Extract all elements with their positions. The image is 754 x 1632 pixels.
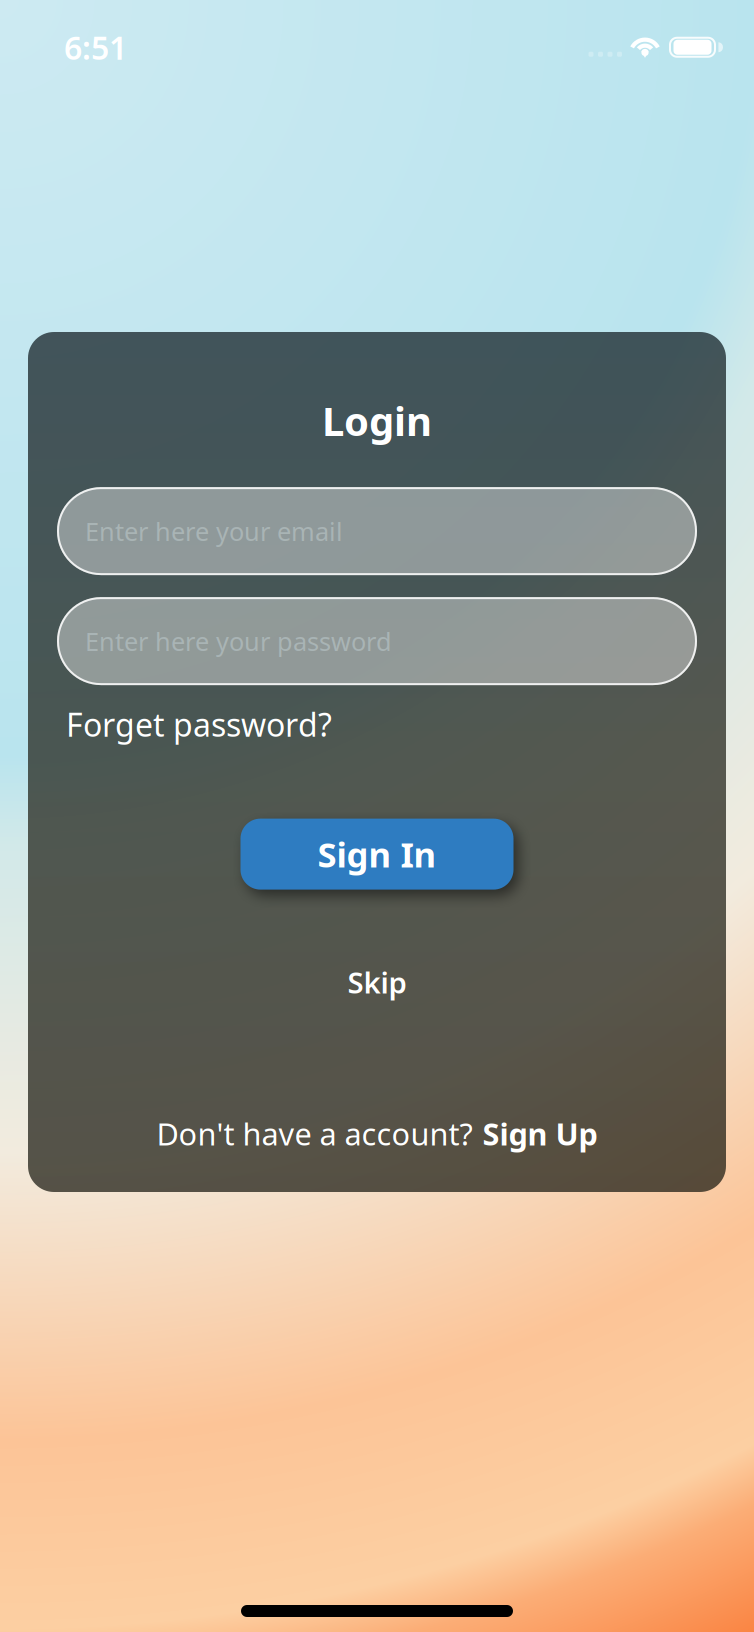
staticText: Forget password? (66, 703, 332, 746)
staticText: Enter here your password (85, 624, 392, 658)
staticText: Login (322, 394, 432, 447)
staticText: Enter here your email (85, 514, 343, 548)
button[interactable]: Sign Up (482, 1113, 597, 1154)
button[interactable]: Forget password? (28, 703, 726, 746)
button[interactable]: Sign In (240, 819, 513, 890)
staticText: Sign In (317, 831, 436, 877)
staticText: Don't have a account? (156, 1113, 472, 1154)
button[interactable]: Enter here your password (57, 597, 697, 685)
button[interactable]: Skip (347, 963, 406, 1002)
button[interactable]: Enter here your email (57, 487, 697, 575)
staticText: 6:51 (64, 26, 127, 68)
staticText: Skip (347, 963, 406, 1002)
staticText: Sign Up (482, 1113, 597, 1154)
